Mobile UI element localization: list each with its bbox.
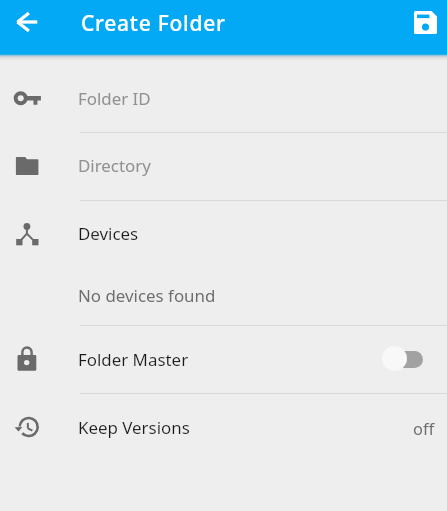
button[interactable]: Folder Master toggle <box>382 347 423 373</box>
staticText: off <box>413 417 435 439</box>
button[interactable]: Navigate up <box>5 0 49 44</box>
staticText: Folder Master <box>78 348 189 371</box>
staticText: No devices found <box>78 284 216 307</box>
button[interactable]: No devices found <box>0 265 447 325</box>
button[interactable]: Folder Master <box>0 325 447 393</box>
button[interactable]: Folder ID <box>0 55 447 132</box>
staticText: Devices <box>78 222 139 245</box>
staticText: Folder ID <box>78 87 151 110</box>
button[interactable]: Keep Versions <box>0 393 447 463</box>
button[interactable]: Save <box>403 0 447 44</box>
staticText: Keep Versions <box>78 416 190 439</box>
button[interactable]: Devices <box>0 200 447 265</box>
button[interactable]: Directory <box>0 132 447 200</box>
staticText: Create Folder <box>81 9 226 38</box>
staticText: Directory <box>78 154 151 177</box>
